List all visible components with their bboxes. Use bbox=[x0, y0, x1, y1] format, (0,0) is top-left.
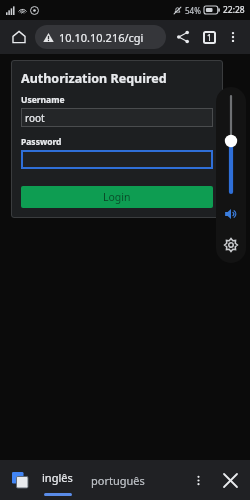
staticText: Username bbox=[21, 94, 65, 106]
staticText: 10.10.10.216/cgi bbox=[59, 30, 144, 45]
staticText: Login bbox=[103, 190, 131, 204]
button[interactable] bbox=[21, 150, 213, 169]
staticText: 1 bbox=[207, 32, 212, 43]
staticText: inglês bbox=[42, 470, 73, 485]
button[interactable]: Login bbox=[21, 186, 213, 208]
button[interactable]: Volume slider bbox=[220, 94, 242, 194]
button[interactable]: Tabs bbox=[196, 24, 222, 50]
staticText: Authorization Required bbox=[21, 70, 167, 87]
button[interactable]: Settings bbox=[220, 234, 242, 256]
button[interactable]: Speaker bbox=[220, 203, 242, 225]
staticText: root bbox=[25, 111, 45, 125]
staticText: 54% bbox=[185, 5, 201, 16]
button[interactable]: Google Translate bbox=[8, 468, 32, 492]
staticText: português bbox=[91, 473, 145, 488]
staticText: Password bbox=[21, 136, 62, 148]
button[interactable]: root bbox=[21, 108, 213, 127]
staticText: 22:28 bbox=[223, 4, 245, 16]
button[interactable]: More options bbox=[222, 26, 244, 48]
button[interactable]: inglês bbox=[42, 460, 73, 500]
button[interactable]: Close bbox=[218, 468, 242, 492]
button[interactable]: 10.10.10.216/cgi bbox=[35, 25, 166, 49]
button[interactable]: Share bbox=[170, 24, 196, 50]
button[interactable]: português bbox=[91, 460, 145, 500]
button[interactable]: Home bbox=[6, 24, 32, 50]
button[interactable]: More options bbox=[186, 468, 210, 492]
